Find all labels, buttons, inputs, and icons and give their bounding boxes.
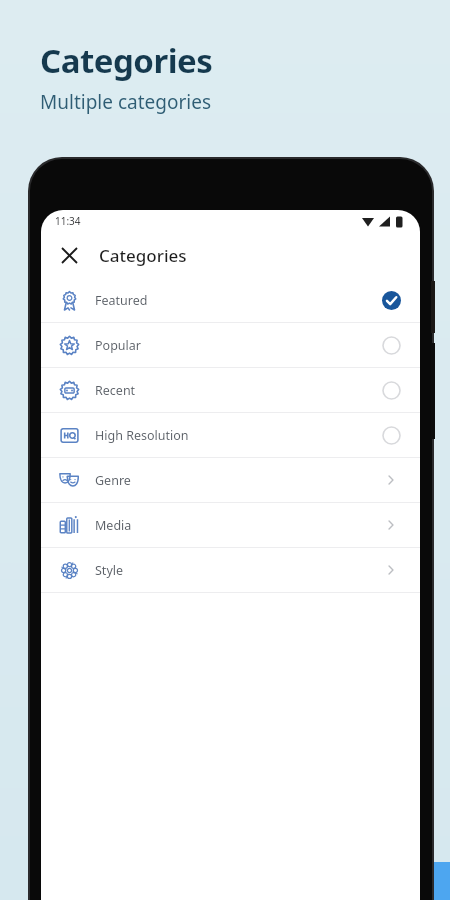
staticText: Popular: [95, 337, 380, 354]
button[interactable]: Popular: [41, 323, 420, 367]
button[interactable]: Recent: [41, 368, 420, 412]
staticText: Recent: [95, 382, 380, 399]
staticText: Media: [95, 517, 380, 534]
button[interactable]: High Resolution: [41, 413, 420, 457]
staticText: Multiple categories: [40, 89, 211, 115]
staticText: Genre: [95, 472, 380, 489]
button[interactable]: Genre: [41, 458, 420, 502]
button[interactable]: Close: [51, 237, 87, 273]
staticText: Categories: [40, 38, 213, 83]
staticText: Featured: [95, 292, 380, 309]
button[interactable]: Style: [41, 548, 420, 592]
staticText: 11:34: [55, 214, 81, 228]
button[interactable]: Media: [41, 503, 420, 547]
staticText: Style: [95, 562, 380, 579]
button[interactable]: Featured: [41, 278, 420, 322]
staticText: High Resolution: [95, 427, 380, 444]
staticText: Categories: [99, 244, 187, 267]
